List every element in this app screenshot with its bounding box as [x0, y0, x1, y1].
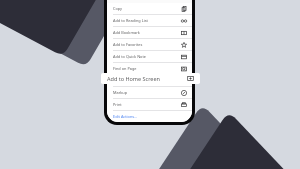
other: markup: [181, 90, 187, 96]
staticText: Add to Favorites: [113, 42, 143, 47]
staticText: Markup: [113, 90, 128, 95]
other: book: [181, 30, 187, 36]
staticText: Find on Page: [113, 66, 137, 71]
staticText: Add to Home Screen: [113, 78, 151, 83]
staticText: Copy: [113, 6, 123, 11]
staticText: Edit Actions...: [113, 114, 138, 119]
other: note: [181, 54, 187, 60]
staticText: Add to Quick Note: [113, 54, 146, 59]
other: home: [187, 75, 194, 82]
other: star: [181, 42, 187, 48]
button[interactable]: Add Bookmark: [107, 27, 192, 38]
staticText: Add to Reading List: [113, 18, 148, 23]
button[interactable]: Markup: [107, 87, 192, 98]
button[interactable]: Print: [107, 99, 192, 110]
other: copy: [181, 6, 187, 12]
button[interactable]: Add to Reading List: [107, 15, 192, 26]
button[interactable]: Add to Home Screen: [107, 75, 192, 86]
button[interactable]: Copy: [107, 3, 192, 14]
button[interactable]: Edit Actions...: [107, 111, 192, 122]
button[interactable]: Add to Favorites: [107, 39, 192, 50]
button[interactable]: Find on Page: [107, 63, 192, 74]
staticText: Print: [113, 102, 122, 107]
other: print: [181, 102, 187, 108]
other: find: [181, 66, 187, 72]
other: glasses: [181, 18, 187, 24]
staticText: Add Bookmark: [113, 30, 140, 35]
button[interactable]: Add to Home Screen: [101, 73, 200, 84]
staticText: Add to Home Screen: [107, 75, 160, 82]
button[interactable]: Add to Quick Note: [107, 51, 192, 62]
